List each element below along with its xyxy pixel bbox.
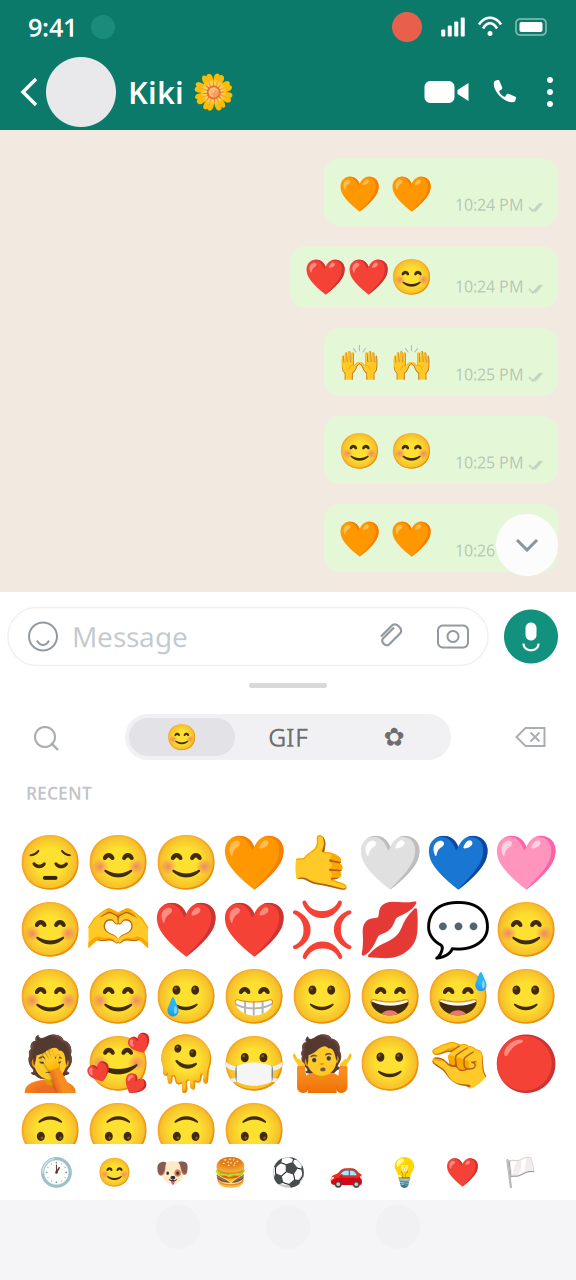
button[interactable]: 🙃 (152, 1097, 220, 1164)
button[interactable]: Video call (422, 65, 472, 119)
staticText: 💋 (357, 899, 423, 960)
button[interactable] (356, 1097, 424, 1164)
staticText: 🕐 (38, 1156, 73, 1188)
button[interactable]: Attach (374, 619, 408, 653)
staticText: 10:24 PM (455, 276, 524, 297)
button[interactable]: 🙂 (492, 963, 560, 1030)
button[interactable]: 🙃 (84, 1097, 152, 1164)
button[interactable]: Emoji category 1 (27, 1149, 85, 1195)
staticText: 🥲 (153, 966, 219, 1027)
button[interactable]: 😊 (84, 829, 152, 896)
button[interactable]: ❤️ (152, 896, 220, 963)
button[interactable]: Emoji category 3 (143, 1149, 201, 1195)
staticText: 🤏 (425, 1033, 491, 1094)
staticText: 10:25 PM (455, 452, 524, 473)
button[interactable]: 😊 (16, 896, 84, 963)
button[interactable]: 🤙 (288, 829, 356, 896)
button[interactable]: 😊 (16, 963, 84, 1030)
staticText: 🙌 🙌 (338, 339, 433, 385)
button[interactable]: 🤏 (424, 1030, 492, 1097)
button[interactable]: More options (538, 65, 562, 119)
button[interactable]: 💙 (424, 829, 492, 896)
button[interactable]: 😊 (84, 963, 152, 1030)
staticText: ❤️ (444, 1156, 479, 1188)
staticText: 10:26 PM (455, 540, 524, 561)
staticText: 🙂 (289, 966, 355, 1027)
staticText: 🙃 (153, 1100, 219, 1161)
staticText: 🩷 (493, 832, 559, 893)
button[interactable]: Emoji (26, 619, 60, 653)
button[interactable]: 🙂 (288, 963, 356, 1030)
staticText: RECENT (26, 781, 92, 804)
staticText: 🧡 (221, 832, 287, 893)
button[interactable]: 🙃 (220, 1097, 288, 1164)
staticText: 🫠 (153, 1033, 219, 1094)
button[interactable]: 😄 (356, 963, 424, 1030)
button[interactable]: 🥰 (84, 1030, 152, 1097)
button[interactable]: 🤦 (16, 1030, 84, 1097)
button[interactable]: 🔴 (492, 1030, 560, 1097)
button[interactable]: 🩷 (492, 829, 560, 896)
staticText (451, 1095, 465, 1166)
button[interactable]: 😁 (220, 963, 288, 1030)
button[interactable]: 😷 (220, 1030, 288, 1097)
staticText: 10:24 PM (455, 194, 524, 215)
staticText: 10:25 PM (455, 364, 524, 385)
button[interactable]: Emoji category 5 (259, 1149, 317, 1195)
button[interactable]: Kiki (46, 57, 235, 127)
button[interactable]: Emoji category 9 (491, 1149, 549, 1195)
button[interactable]: 🙃 (16, 1097, 84, 1164)
staticText: 🥰 (85, 1033, 151, 1094)
button[interactable]: Backspace (508, 714, 554, 760)
button[interactable]: Emoji category 7 (375, 1149, 433, 1195)
button[interactable]: Record voice message (504, 609, 558, 663)
button[interactable]: 🥲 (152, 963, 220, 1030)
button[interactable]: 💋 (356, 896, 424, 963)
staticText: 🏳️ (502, 1156, 537, 1188)
button[interactable]: ✿ (341, 718, 447, 756)
button[interactable]: 🤍 (356, 829, 424, 896)
button[interactable] (424, 1097, 492, 1164)
staticText: 🙂 (357, 1033, 423, 1094)
button[interactable]: Emoji category 4 (201, 1149, 259, 1195)
button[interactable]: 😔 (16, 829, 84, 896)
button[interactable]: 🤷 (288, 1030, 356, 1097)
button[interactable]: Back (14, 66, 44, 118)
button[interactable]: 😅 (424, 963, 492, 1030)
staticText: 🫶 (85, 899, 151, 960)
staticText: ❤️❤️😊 (304, 257, 433, 297)
button[interactable]: Emoji category 2 (85, 1149, 143, 1195)
button[interactable]: 🧡 (220, 829, 288, 896)
staticText: 💡 (386, 1156, 421, 1188)
button[interactable]: 🫠 (152, 1030, 220, 1097)
button[interactable]: Emoji category 6 (317, 1149, 375, 1195)
button[interactable] (288, 1097, 356, 1164)
staticText: 😊 (17, 966, 83, 1027)
button[interactable]: 🫶 (84, 896, 152, 963)
button[interactable]: 💬 (424, 896, 492, 963)
staticText: 😄 (357, 966, 423, 1027)
button[interactable]: 🙂 (356, 1030, 424, 1097)
button[interactable] (492, 1097, 560, 1164)
staticText: 9:41 (28, 10, 77, 44)
staticText: 🚗 (328, 1156, 363, 1188)
staticText (519, 1095, 533, 1166)
button[interactable]: ❤️ (220, 896, 288, 963)
button[interactable]: 😊 (129, 718, 235, 756)
button[interactable]: 💢 (288, 896, 356, 963)
button[interactable]: Scroll to bottom (496, 514, 558, 576)
button[interactable]: Voice call (482, 65, 526, 119)
staticText: 🌼 (192, 72, 235, 112)
button[interactable]: 😊 (492, 896, 560, 963)
staticText (383, 1095, 397, 1166)
button[interactable]: Search emoji (22, 714, 68, 760)
staticText: 🙃 (221, 1100, 287, 1161)
button[interactable]: Camera (436, 619, 470, 653)
staticText: 💢 (289, 899, 355, 960)
button[interactable]: 😊 (152, 829, 220, 896)
staticText: Message (72, 618, 188, 655)
button[interactable]: Emoji category 8 (433, 1149, 491, 1195)
staticText: ❤️ (153, 899, 219, 960)
button[interactable]: GIF (235, 718, 341, 756)
